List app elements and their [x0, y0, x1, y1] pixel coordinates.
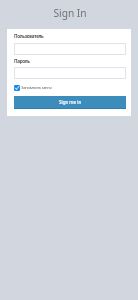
staticText: Пароль: [14, 58, 30, 64]
button[interactable]: Пароль: [14, 67, 126, 79]
button[interactable]: Sign me in: [14, 96, 126, 108]
staticText: Пользователь: [14, 33, 44, 39]
button[interactable]: Запомнить меня: [14, 84, 59, 92]
staticText: Запомнить меня: [21, 84, 52, 90]
button[interactable]: Пользователь: [14, 43, 126, 55]
staticText: Sign me in: [59, 99, 82, 105]
staticText: Sign In: [1, 6, 138, 20]
